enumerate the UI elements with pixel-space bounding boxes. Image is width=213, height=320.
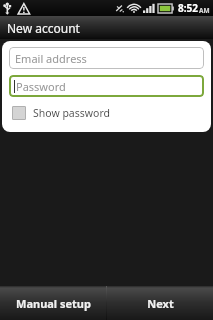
staticText: Email address [15,51,87,66]
button[interactable]: Next [107,286,213,320]
staticText: Next [147,296,174,311]
button[interactable]: Password [9,75,204,97]
staticText: New account [7,20,80,36]
button[interactable]: Manual setup [0,286,106,320]
staticText: Password [16,79,66,94]
staticText: 8:52 [178,1,198,15]
staticText: AM [199,6,210,15]
staticText: Manual setup [16,296,91,311]
button[interactable]: Email address [9,47,204,69]
button[interactable]: Show password [9,103,204,123]
staticText: Show password [33,106,110,120]
